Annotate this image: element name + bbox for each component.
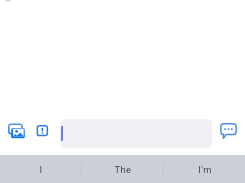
staticText: The <box>114 164 132 175</box>
button[interactable]: Stickers <box>34 122 50 138</box>
staticText: I <box>39 164 43 175</box>
button[interactable]: I <box>0 155 81 183</box>
staticText: I'm <box>198 164 212 175</box>
button[interactable]: The <box>82 155 163 183</box>
button[interactable]: Emoji <box>218 121 238 141</box>
button[interactable]: I'm <box>164 155 245 183</box>
button[interactable]: Insert photo <box>6 121 28 143</box>
button[interactable]: Text message <box>60 119 212 148</box>
